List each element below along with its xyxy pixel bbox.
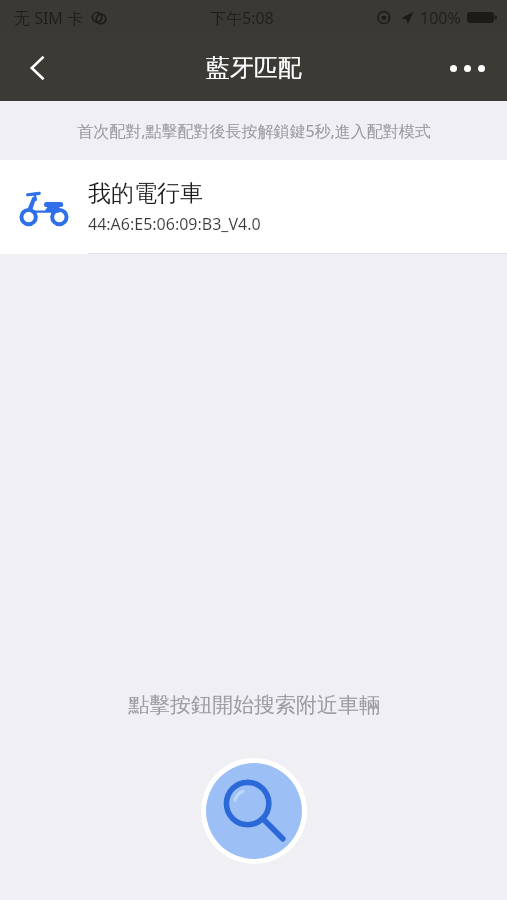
staticText: 44:A6:E5:06:09:B3_V4.0	[88, 213, 261, 235]
button[interactable]: More options	[427, 35, 507, 101]
staticText: 點擊按鈕開始搜索附近車輛	[128, 692, 380, 718]
button[interactable]: Back	[0, 35, 76, 101]
button[interactable]: Search for nearby vehicles	[201, 758, 307, 864]
staticText: 我的電行車	[88, 179, 203, 208]
button[interactable]: 我的電行車	[0, 160, 507, 254]
staticText: 无 SIM 卡	[14, 7, 84, 29]
staticText: 首次配對,點擊配對後長按解鎖鍵5秒,進入配對模式	[77, 120, 431, 142]
staticText: 100%	[420, 7, 461, 29]
staticText: 下午5:08	[210, 7, 274, 29]
staticText: 藍牙匹配	[206, 53, 302, 83]
